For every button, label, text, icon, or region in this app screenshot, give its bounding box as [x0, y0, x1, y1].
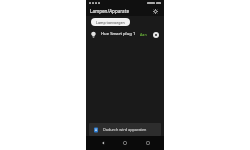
staticText: Hue Smart plug 1: [101, 31, 140, 37]
button[interactable]: Lamp toevoegen: [91, 18, 130, 26]
button[interactable]: Back: [97, 137, 109, 149]
staticText: Aan: [140, 32, 147, 37]
button[interactable]: Device settings: [151, 30, 160, 39]
button[interactable]: Hue Smart plug 1: [86, 28, 164, 40]
button[interactable]: Home: [119, 137, 131, 149]
button[interactable]: Settings: [151, 7, 160, 16]
staticText: Lamp toevoegen: [96, 20, 125, 25]
button[interactable]: Dadurch wird apparaten: [89, 123, 161, 136]
staticText: Dadurch wird apparaten: [103, 127, 157, 132]
button[interactable]: Recents: [142, 137, 154, 149]
staticText: Lampen/Apparate: [90, 8, 151, 14]
